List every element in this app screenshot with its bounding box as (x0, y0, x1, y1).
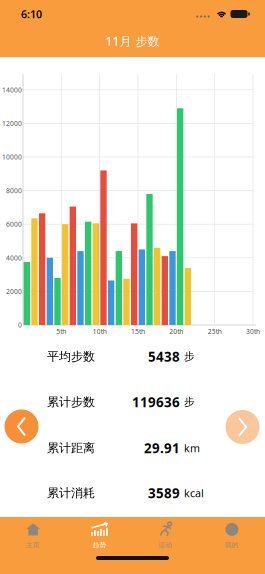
staticText: 趋势 (92, 541, 106, 549)
staticText: 主页 (26, 541, 40, 549)
staticText: 8000 (6, 186, 22, 195)
staticText: 30th (246, 327, 260, 336)
staticText: 20th (169, 327, 183, 336)
staticText: 10000 (2, 153, 22, 161)
staticText: 累计消耗 (47, 486, 95, 500)
staticText: 6:10 (21, 7, 42, 21)
staticText: 12000 (2, 119, 22, 128)
staticText: 11月 步数 (105, 33, 159, 49)
staticText: 运动 (159, 541, 173, 549)
button[interactable]: 主页 (0, 516, 66, 556)
staticText: 6000 (6, 220, 22, 229)
staticText: 5438 (148, 348, 180, 365)
staticText: km (184, 441, 200, 455)
staticText: 29.91 (144, 439, 180, 457)
staticText: 14000 (2, 85, 22, 94)
button[interactable]: 我的 (199, 516, 265, 556)
staticText: 平均步数 (47, 349, 95, 364)
button[interactable]: 运动 (133, 516, 199, 556)
button[interactable]: 趋势 (66, 516, 132, 556)
staticText: 累计步数 (47, 395, 95, 409)
staticText: 25th (208, 327, 222, 336)
staticText: 15th (131, 327, 145, 336)
staticText: 我的 (225, 541, 239, 549)
staticText: 4000 (6, 253, 22, 262)
staticText: 0 (18, 321, 22, 329)
staticText: 步 (184, 395, 195, 408)
staticText: 119636 (132, 393, 180, 411)
staticText: kcal (184, 486, 204, 500)
staticText: 步 (184, 350, 195, 363)
staticText: 2000 (6, 287, 22, 296)
staticText: 5th (56, 327, 66, 336)
staticText: 10th (93, 327, 107, 336)
staticText: 累计距离 (47, 441, 95, 455)
button[interactable]: Previous month (4, 409, 38, 443)
button[interactable]: Next month (225, 410, 259, 444)
staticText: 3589 (148, 484, 180, 502)
